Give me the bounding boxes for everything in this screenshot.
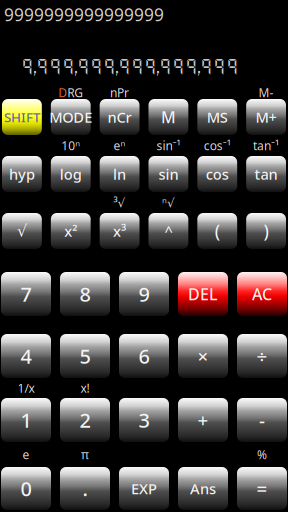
staticText: 1 xyxy=(20,407,31,433)
button[interactable]: EXP xyxy=(119,467,169,510)
staticText: ( xyxy=(215,219,220,242)
button[interactable]: 9 xyxy=(119,272,169,316)
button[interactable]: MODE xyxy=(51,99,91,135)
staticText: hyp xyxy=(9,164,35,184)
button[interactable]: ) xyxy=(246,213,286,249)
staticText: ÷ xyxy=(256,344,267,368)
staticText: ³√ xyxy=(114,194,126,210)
button[interactable]: × xyxy=(178,334,228,378)
staticText: M- xyxy=(259,84,274,100)
staticText: 3 xyxy=(138,407,149,433)
button[interactable]: ^ xyxy=(148,213,188,249)
staticText: ⁿ√ xyxy=(162,194,175,210)
staticText: + xyxy=(197,408,208,432)
staticText: 7 xyxy=(20,281,31,307)
button[interactable]: 3 xyxy=(119,398,169,442)
button[interactable]: . xyxy=(60,467,110,510)
staticText: log xyxy=(60,164,82,184)
button[interactable]: x³ xyxy=(100,213,139,249)
staticText: 8 xyxy=(79,281,90,307)
staticText: cos xyxy=(206,164,229,184)
staticText: MS xyxy=(207,107,228,127)
button[interactable]: SHIFT xyxy=(2,99,42,135)
button[interactable]: ( xyxy=(197,213,237,249)
button[interactable]: DEL xyxy=(178,272,228,316)
button[interactable]: = xyxy=(237,467,287,510)
staticText: eⁿ xyxy=(114,137,126,153)
button[interactable]: + xyxy=(178,398,228,442)
staticText: 1/x xyxy=(17,380,34,396)
staticText: ^ xyxy=(164,221,172,241)
button[interactable]: cos xyxy=(197,156,237,192)
button[interactable]: nCr xyxy=(100,99,139,135)
button[interactable]: Ans xyxy=(178,467,228,510)
button[interactable]: 7 xyxy=(1,272,51,316)
staticText: 5 xyxy=(79,343,90,369)
staticText: . xyxy=(82,475,87,502)
staticText: nPr xyxy=(110,84,129,100)
button[interactable]: sin xyxy=(148,156,188,192)
staticText: 4 xyxy=(20,343,31,369)
staticText: √ xyxy=(17,222,27,240)
button[interactable]: tan xyxy=(246,156,286,192)
button[interactable]: 6 xyxy=(119,334,169,378)
staticText: e xyxy=(22,446,29,462)
button[interactable]: 0 xyxy=(1,467,51,510)
staticText: AC xyxy=(252,283,272,305)
staticText: Ans xyxy=(190,479,216,498)
button[interactable]: hyp xyxy=(2,156,42,192)
button[interactable]: 2 xyxy=(60,398,110,442)
staticText: π xyxy=(81,446,89,462)
staticText: nCr xyxy=(108,107,132,127)
staticText: 9,999,999,999,999,999 xyxy=(21,57,239,77)
staticText: 2 xyxy=(79,407,90,433)
button[interactable]: M+ xyxy=(246,99,286,135)
staticText: x³ xyxy=(113,221,126,241)
button[interactable]: M xyxy=(148,99,188,135)
staticText: cos⁻¹ xyxy=(204,137,231,153)
staticText: tan⁻¹ xyxy=(253,137,279,153)
button[interactable]: 5 xyxy=(60,334,110,378)
staticText: ) xyxy=(264,219,269,242)
button[interactable]: MS xyxy=(197,99,237,135)
button[interactable]: ÷ xyxy=(237,334,287,378)
staticText: x² xyxy=(64,221,77,241)
button[interactable]: ln xyxy=(100,156,139,192)
staticText: D xyxy=(58,84,67,100)
staticText: 10ⁿ xyxy=(61,137,80,153)
button[interactable]: log xyxy=(51,156,91,192)
staticText: x! xyxy=(80,380,89,396)
staticText: RG xyxy=(67,84,83,100)
staticText: sin⁻¹ xyxy=(156,137,180,153)
staticText: 9999999999999999 xyxy=(4,3,164,26)
staticText: × xyxy=(197,344,208,368)
staticText: MODE xyxy=(49,107,92,127)
button[interactable]: x² xyxy=(51,213,91,249)
staticText: = xyxy=(256,476,267,501)
button[interactable]: 1 xyxy=(1,398,51,442)
staticText: 0 xyxy=(20,475,31,502)
staticText: sin xyxy=(158,164,178,184)
staticText: SHIFT xyxy=(4,108,40,126)
staticText: % xyxy=(257,446,267,462)
staticText: 9 xyxy=(138,281,149,307)
button[interactable]: 8 xyxy=(60,272,110,316)
button[interactable]: AC xyxy=(237,272,287,316)
staticText: M+ xyxy=(256,107,277,127)
button[interactable]: - xyxy=(237,398,287,442)
staticText: EXP xyxy=(131,479,157,498)
staticText: 6 xyxy=(138,343,149,369)
staticText: DEL xyxy=(188,283,218,305)
staticText: ln xyxy=(113,164,126,184)
button[interactable]: √ xyxy=(2,213,42,249)
button[interactable]: 4 xyxy=(1,334,51,378)
staticText: - xyxy=(259,408,265,432)
staticText: M xyxy=(161,106,176,128)
staticText: tan xyxy=(255,164,278,184)
